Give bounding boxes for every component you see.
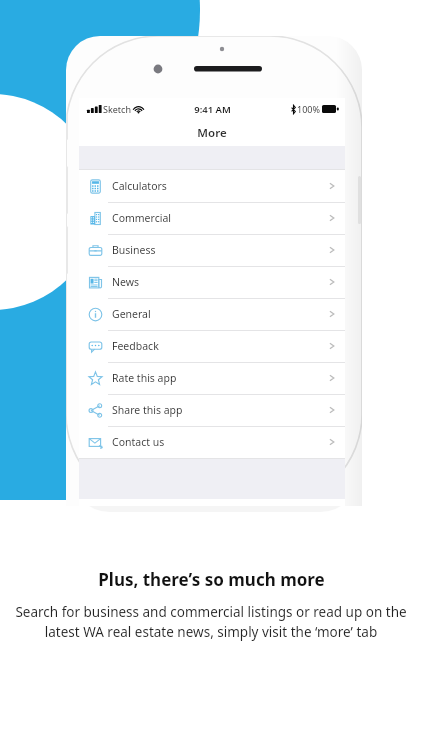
staticText: Business: [112, 243, 156, 257]
staticText: Contact us: [112, 435, 165, 449]
staticText: Rate this app: [112, 371, 177, 385]
staticText: Sketch: [103, 103, 131, 115]
button[interactable]: General: [79, 298, 345, 330]
staticText: More: [197, 125, 227, 141]
button[interactable]: Feedback: [79, 330, 345, 362]
staticText: Commercial: [112, 211, 172, 225]
staticText: Feedback: [112, 339, 159, 353]
button[interactable]: News: [79, 266, 345, 298]
button[interactable]: Commercial: [79, 202, 345, 234]
button[interactable]: Business: [79, 234, 345, 266]
staticText: 9:41 AM: [194, 103, 231, 116]
button[interactable]: Calculators: [79, 170, 345, 202]
staticText: News: [112, 275, 139, 289]
staticText: Share this app: [112, 403, 183, 417]
staticText: General: [112, 307, 151, 321]
button[interactable]: Share this app: [79, 394, 345, 426]
staticText: Calculators: [112, 179, 167, 193]
button[interactable]: Contact us: [79, 426, 345, 458]
staticText: Plus, there’s so much more: [98, 568, 325, 591]
staticText: 100%: [297, 103, 320, 115]
button[interactable]: Rate this app: [79, 362, 345, 394]
staticText: Search for business and commercial listi…: [14, 603, 408, 641]
